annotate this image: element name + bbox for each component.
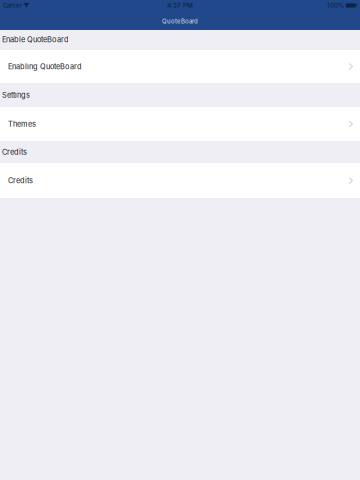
staticText: Settings [2, 90, 30, 99]
button[interactable]: Credits [0, 162, 360, 199]
staticText: Credits [8, 176, 33, 185]
staticText: Themes [8, 120, 36, 128]
staticText: Carrier [3, 2, 22, 9]
button[interactable]: Themes [0, 106, 360, 142]
staticText: QuoteBoard [162, 18, 198, 25]
staticText: 100% [327, 2, 344, 9]
staticText: Enabling QuoteBoard [8, 62, 82, 71]
staticText: Credits [2, 147, 27, 156]
button[interactable]: Enabling QuoteBoard [0, 49, 360, 84]
staticText: 4:37 PM [167, 2, 193, 9]
staticText: Enable QuoteBoard [2, 35, 69, 44]
